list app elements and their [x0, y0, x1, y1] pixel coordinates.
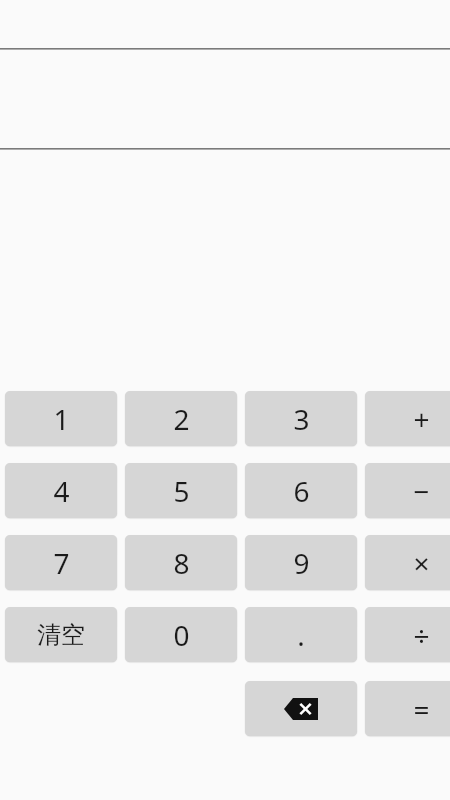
button[interactable]: . — [245, 607, 357, 662]
button[interactable]: 6 — [245, 463, 357, 518]
button[interactable]: + — [365, 391, 450, 446]
staticText: − — [413, 472, 430, 510]
staticText: 1 — [53, 400, 70, 438]
staticText: ÷ — [413, 616, 430, 654]
button[interactable]: 4 — [5, 463, 117, 518]
button[interactable]: 2 — [125, 391, 237, 446]
button[interactable]: 9 — [245, 535, 357, 590]
staticText: 6 — [293, 472, 310, 510]
staticText: 3 — [293, 400, 310, 438]
staticText: 5 — [173, 472, 190, 510]
button[interactable]: 7 — [5, 535, 117, 590]
button[interactable]: 0 — [125, 607, 237, 662]
staticText: 0 — [173, 616, 190, 654]
button[interactable]: 5 — [125, 463, 237, 518]
staticText: 2 — [173, 400, 190, 438]
staticText: 9 — [293, 544, 310, 582]
staticText: + — [413, 400, 430, 438]
button[interactable]: 清空 — [5, 607, 117, 662]
button[interactable]: Backspace — [245, 681, 357, 736]
staticText: × — [413, 544, 430, 582]
staticText: 清空 — [37, 620, 85, 650]
staticText: = — [413, 690, 430, 728]
button[interactable]: 1 — [5, 391, 117, 446]
button[interactable]: 3 — [245, 391, 357, 446]
staticText: 4 — [53, 472, 70, 510]
staticText: 8 — [173, 544, 190, 582]
button[interactable]: ÷ — [365, 607, 450, 662]
button[interactable]: 8 — [125, 535, 237, 590]
button[interactable]: − — [365, 463, 450, 518]
staticText: . — [297, 616, 305, 654]
button[interactable]: × — [365, 535, 450, 590]
staticText: 7 — [53, 544, 70, 582]
button[interactable]: = — [365, 681, 450, 736]
